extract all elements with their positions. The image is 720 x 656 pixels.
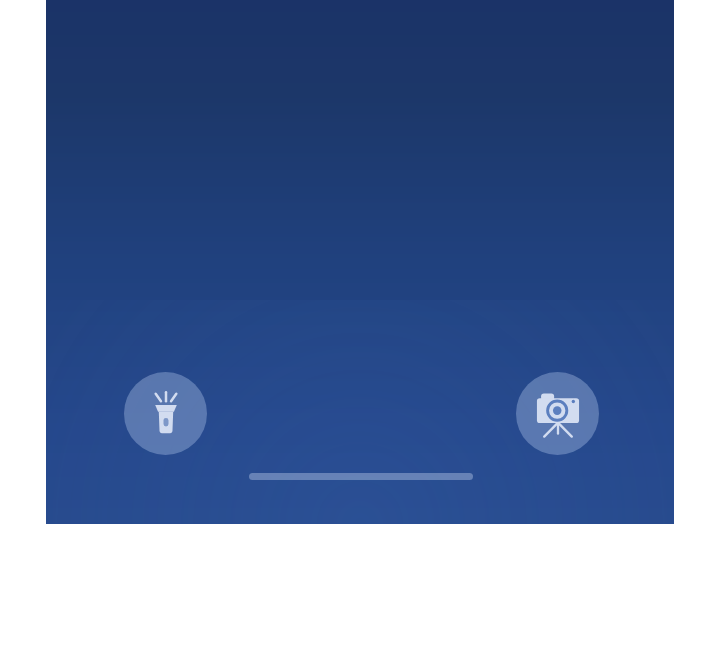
button[interactable]: Camera bbox=[516, 372, 599, 455]
button[interactable]: Flashlight bbox=[124, 372, 207, 455]
